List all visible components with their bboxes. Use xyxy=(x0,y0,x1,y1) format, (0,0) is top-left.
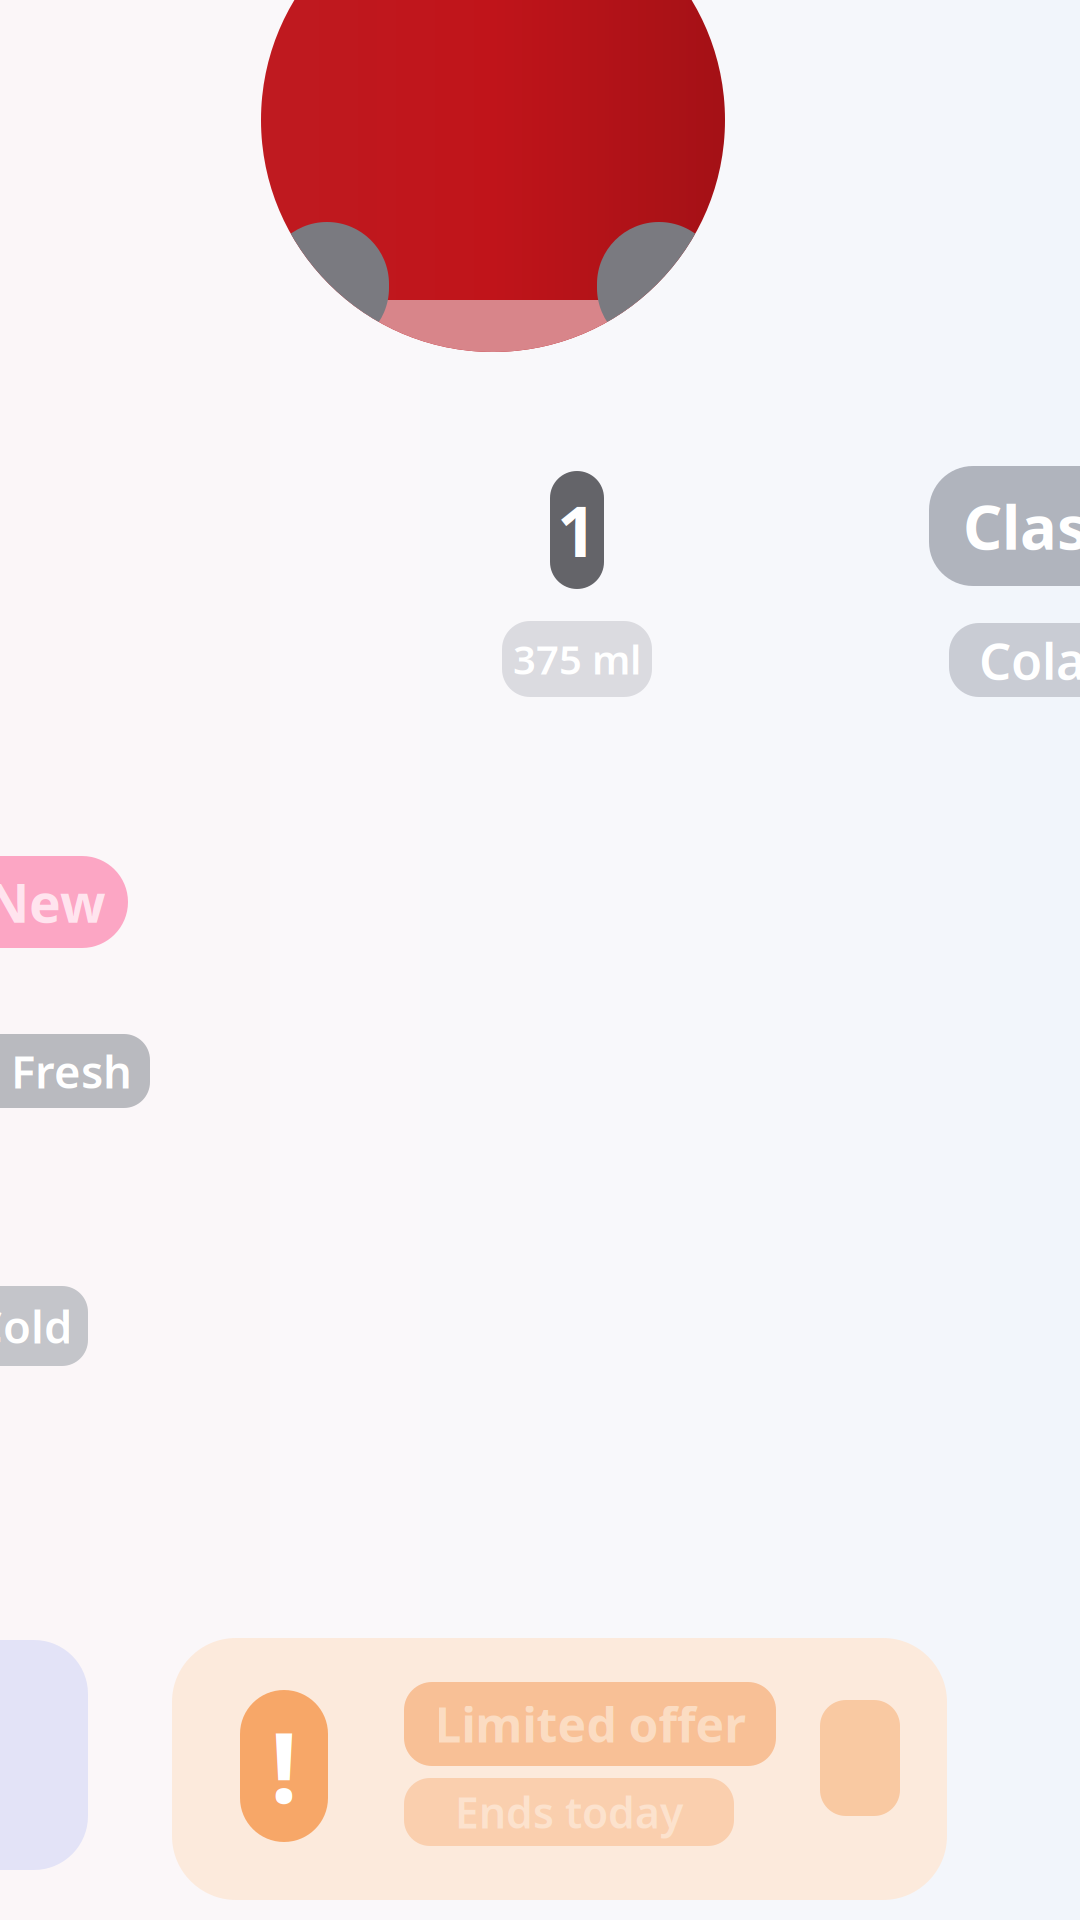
button[interactable]: Classic xyxy=(929,466,1080,697)
button[interactable]: New xyxy=(0,856,128,948)
staticText: Ends today xyxy=(455,1784,683,1840)
staticText: Classic xyxy=(963,485,1080,567)
staticText: Limited offer xyxy=(434,1692,745,1756)
staticText: Fresh xyxy=(11,1041,132,1101)
button[interactable]: Quantity 1, 375 millilitres xyxy=(502,471,652,697)
staticText: New xyxy=(0,867,106,937)
staticText: 375 ml xyxy=(513,632,641,685)
staticText: Cola xyxy=(979,626,1080,694)
staticText: ! xyxy=(270,1702,297,1830)
staticText: Cold xyxy=(0,1296,72,1356)
button[interactable]: ! xyxy=(172,1638,947,1900)
staticText: 1 xyxy=(557,484,597,576)
